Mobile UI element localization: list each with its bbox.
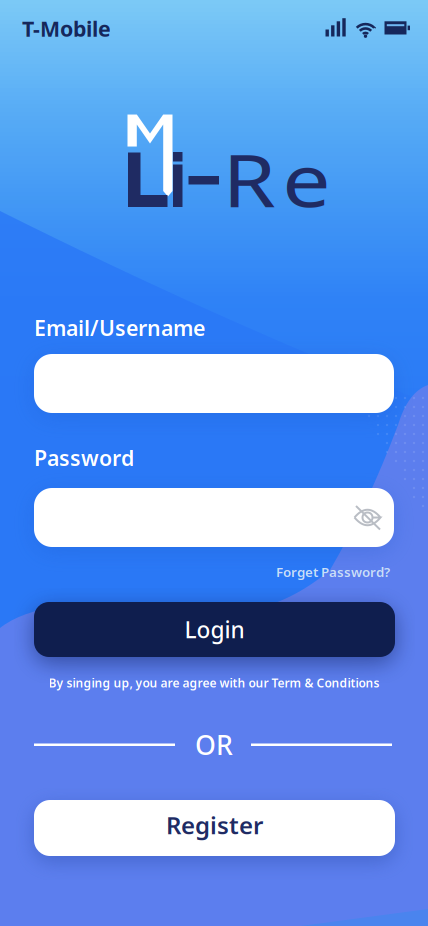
button[interactable]: Show password [350,500,386,536]
staticText: Email/Username [34,313,205,342]
staticText: Register [166,809,263,841]
staticText: Password [34,444,134,472]
button[interactable]: Forget Password? [34,563,390,581]
button[interactable]: Register [34,800,395,856]
staticText: By singing up, you are agree with our Te… [48,675,379,691]
staticText: Login [184,614,244,644]
staticText: Forget Password? [276,563,390,581]
button[interactable]: Login [34,602,395,657]
button[interactable]: Password [34,488,394,547]
button[interactable]: Email/Username [34,354,394,413]
staticText: Re [222,130,314,227]
staticText: OR [195,727,233,762]
staticText: T-Mobile [22,14,111,42]
